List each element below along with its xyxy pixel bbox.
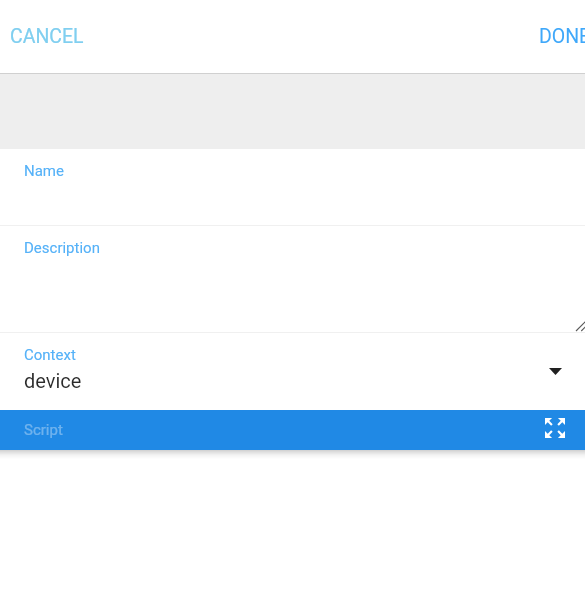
staticText: CANCEL <box>10 25 84 48</box>
staticText: Script <box>24 421 63 439</box>
staticText: device <box>24 369 82 392</box>
staticText: Description <box>24 239 100 257</box>
button[interactable]: Description <box>0 226 585 332</box>
staticText: Name <box>24 162 64 180</box>
button[interactable]: DONE <box>523 11 585 62</box>
button[interactable]: Open script editor full screen <box>545 418 565 438</box>
button[interactable]: Context <box>0 333 585 410</box>
staticText: DONE <box>539 25 585 48</box>
staticText: Context <box>24 346 76 364</box>
button[interactable]: Name <box>0 149 585 225</box>
button[interactable]: Script <box>0 410 585 450</box>
button[interactable]: CANCEL <box>0 11 100 62</box>
